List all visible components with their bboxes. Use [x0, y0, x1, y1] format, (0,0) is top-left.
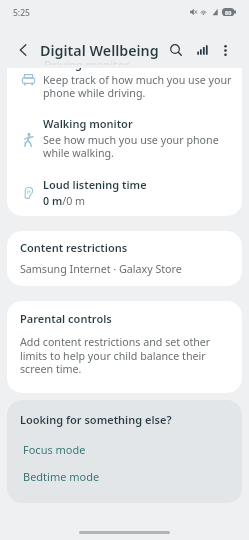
button[interactable]: Walking monitor: [7, 108, 242, 166]
staticText: Looking for something else?: [20, 412, 172, 427]
staticText: Driving monitor: [43, 68, 129, 71]
staticText: Add content restrictions and set other l…: [20, 335, 211, 376]
staticText: Samsung Internet · Galaxy Store: [20, 262, 182, 277]
staticText: Digital Wellbeing: [40, 41, 159, 60]
button[interactable]: Search: [165, 39, 187, 61]
staticText: Driving monitor: [44, 60, 130, 65]
button[interactable]: Bedtime mode: [7, 463, 242, 489]
button[interactable]: Usage statistics: [191, 39, 213, 61]
button[interactable]: Driving monitor: [7, 68, 242, 106]
staticText: 0 m/0 m: [43, 194, 86, 209]
button[interactable]: More options: [214, 39, 236, 61]
button[interactable]: Navigate up: [12, 39, 34, 61]
staticText: See how much you use your phone while wa…: [43, 133, 219, 160]
staticText: Focus mode: [23, 442, 86, 457]
staticText: Bedtime mode: [23, 469, 100, 484]
button[interactable]: Loud listening time: [7, 169, 242, 216]
staticText: Content restrictions: [20, 240, 128, 255]
button[interactable]: Parental controls: [7, 301, 242, 393]
staticText: 80: [225, 9, 232, 16]
staticText: Parental controls: [20, 311, 112, 326]
staticText: Keep track of how much you use your phon…: [43, 73, 232, 100]
staticText: Walking monitor: [43, 116, 133, 131]
staticText: 5:25: [13, 7, 30, 19]
button[interactable]: Content restrictions: [7, 231, 242, 286]
staticText: Loud listening time: [43, 177, 147, 192]
button[interactable]: Focus mode: [7, 436, 242, 462]
